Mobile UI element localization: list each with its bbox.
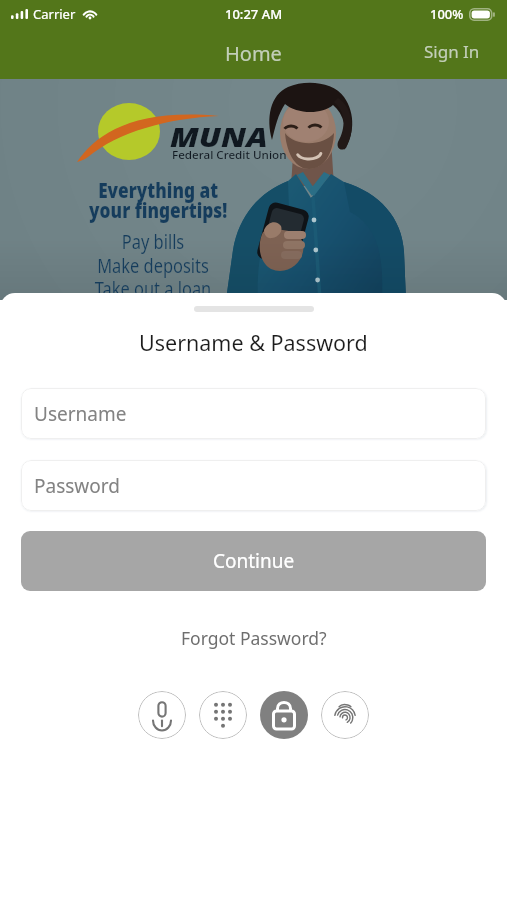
staticText: Password <box>34 473 120 499</box>
button[interactable]: Password <box>21 460 486 511</box>
staticText: Everything at <box>98 176 219 205</box>
staticText: Sign In <box>424 40 480 63</box>
button[interactable]: Keypad login <box>199 691 247 739</box>
staticText: Forgot Password? <box>181 626 327 650</box>
staticText: Take out a loan <box>95 275 212 302</box>
button[interactable]: Voice login <box>138 691 186 739</box>
staticText: 100% <box>430 5 464 23</box>
button[interactable]: Username <box>21 388 486 439</box>
staticText: Username <box>34 401 127 427</box>
staticText: 10:27 AM <box>225 5 283 23</box>
staticText: Make deposits <box>97 252 209 279</box>
button[interactable]: Home <box>211 36 296 71</box>
staticText: Continue <box>213 548 295 574</box>
button[interactable]: Sign In <box>414 36 490 67</box>
staticText: Username & Password <box>139 328 368 357</box>
staticText: Federal Credit Union <box>172 147 287 162</box>
staticText: Carrier <box>33 5 76 23</box>
button[interactable]: Password login <box>260 691 308 739</box>
staticText: your fingertips! <box>89 196 228 225</box>
button[interactable]: Fingerprint login <box>321 691 369 739</box>
button[interactable]: Forgot Password? <box>173 622 335 654</box>
staticText: Pay bills <box>122 228 185 255</box>
button[interactable]: Continue <box>21 531 486 591</box>
staticText: MUNA <box>170 119 268 154</box>
staticText: Home <box>225 40 282 67</box>
